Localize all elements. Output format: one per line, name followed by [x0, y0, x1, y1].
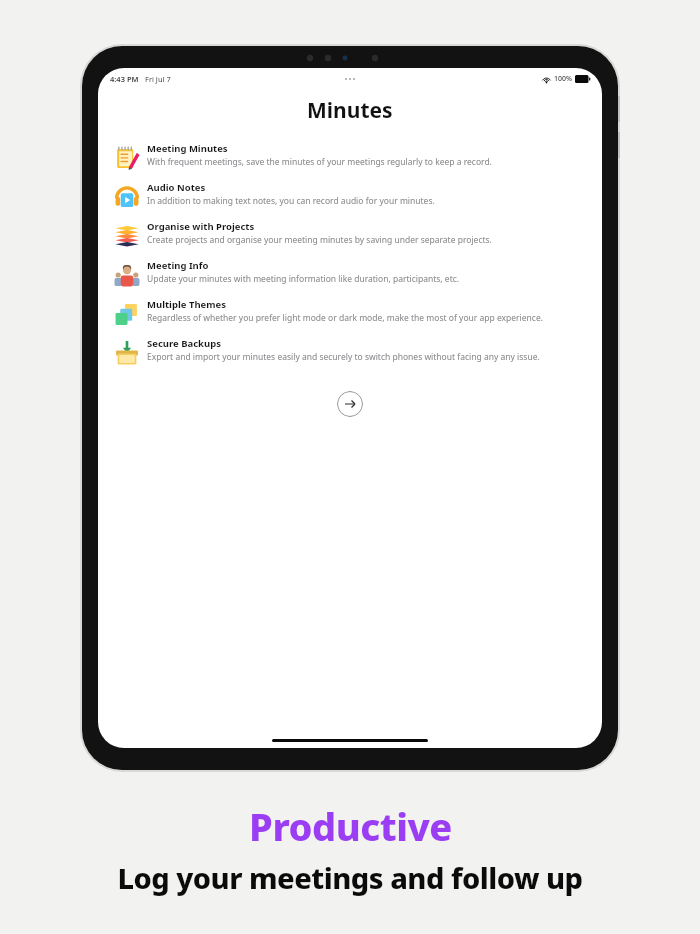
staticText: Create projects and organise your meetin… [147, 234, 492, 246]
button[interactable]: Meeting Minutes [98, 137, 602, 176]
staticText: Log your meetings and follow up [117, 858, 583, 897]
staticText: With frequent meetings, save the minutes… [147, 156, 492, 168]
staticText: Audio Notes [147, 181, 206, 194]
staticText: In addition to making text notes, you ca… [147, 195, 435, 207]
staticText: 4:43 PM [110, 74, 139, 84]
staticText: Meeting Info [147, 259, 209, 272]
staticText: Regardless of whether you prefer light m… [147, 312, 543, 324]
staticText: Organise with Projects [147, 220, 255, 233]
staticText: Meeting Minutes [147, 142, 228, 155]
staticText: Productive [249, 800, 452, 852]
button[interactable]: Audio Notes [98, 176, 602, 215]
button[interactable]: Meeting Info [98, 254, 602, 293]
staticText: Export and import your minutes easily an… [147, 351, 540, 363]
staticText: 100% [554, 74, 572, 84]
button[interactable]: Continue [337, 391, 363, 417]
button[interactable]: Multiple Themes [98, 293, 602, 332]
staticText: Update your minutes with meeting informa… [147, 273, 460, 285]
staticText: Secure Backups [147, 337, 221, 350]
staticText: Fri Jul 7 [145, 74, 171, 84]
staticText: Minutes [307, 96, 393, 125]
button[interactable]: Secure Backups [98, 332, 602, 371]
staticText: Multiple Themes [147, 298, 226, 311]
button[interactable]: Organise with Projects [98, 215, 602, 254]
